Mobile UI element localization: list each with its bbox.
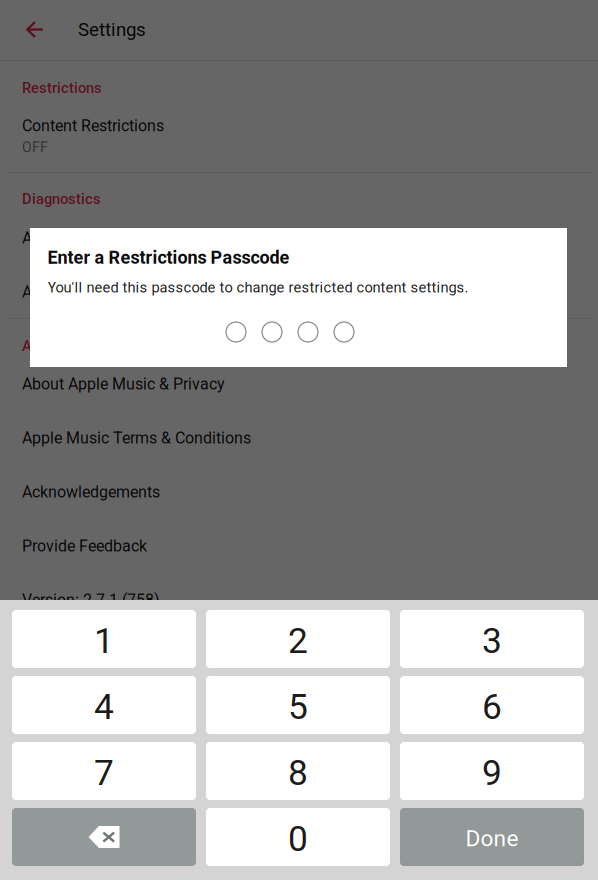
- staticText: Enter a Restrictions Passcode: [47, 247, 289, 268]
- staticText: Provide Feedback: [22, 537, 147, 555]
- staticText: Version: 2.7.1 (758): [22, 591, 160, 609]
- staticText: Restrictions: [22, 79, 102, 97]
- staticText: About: [22, 337, 61, 355]
- staticText: 9: [482, 752, 502, 794]
- staticText: 7: [94, 752, 114, 794]
- button[interactable]: Acknowledgements: [0, 465, 598, 519]
- button[interactable]: Automatic Diagnostics: [0, 211, 598, 265]
- button[interactable]: 2: [206, 610, 390, 668]
- button[interactable]: About Apple Music & Privacy: [0, 357, 598, 411]
- button[interactable]: 0: [206, 808, 390, 866]
- button[interactable]: Content Restrictions: [0, 111, 598, 161]
- staticText: About Apple Music & Privacy: [22, 375, 225, 393]
- staticText: 5: [288, 686, 308, 728]
- button[interactable]: Delete: [12, 808, 196, 866]
- button[interactable]: Settings: [78, 0, 146, 59]
- staticText: Apple Music Terms & Conditions: [22, 429, 251, 447]
- staticText: Content Restrictions: [22, 116, 164, 135]
- staticText: 0: [288, 818, 308, 860]
- button[interactable]: 8: [206, 742, 390, 800]
- staticText: 2: [288, 620, 308, 662]
- button[interactable]: Done: [400, 808, 584, 866]
- staticText: 3: [482, 620, 502, 662]
- staticText: OFF: [22, 139, 48, 156]
- button[interactable]: Apple Music Terms & Conditions: [0, 411, 598, 465]
- staticText: Automatic Diagnostics: [22, 229, 183, 247]
- staticText: Done: [465, 825, 518, 852]
- staticText: Acknowledgements: [22, 483, 160, 501]
- button[interactable]: 6: [400, 676, 584, 734]
- staticText: 6: [482, 686, 502, 728]
- staticText: You'll need this passcode to change rest…: [47, 279, 468, 296]
- button[interactable]: Provide Feedback: [0, 519, 598, 573]
- staticText: 8: [288, 752, 308, 794]
- button[interactable]: Analytics & Improvements: [0, 265, 598, 319]
- button[interactable]: 4: [12, 676, 196, 734]
- staticText: Analytics & Improvements: [22, 283, 206, 301]
- button[interactable]: 1: [12, 610, 196, 668]
- staticText: Settings: [78, 19, 146, 40]
- button[interactable]: Version: 2.7.1 (758): [0, 573, 598, 627]
- button[interactable]: 3: [400, 610, 584, 668]
- staticText: 1: [94, 620, 114, 662]
- staticText: Diagnostics: [22, 190, 101, 208]
- staticText: 4: [94, 686, 114, 728]
- button[interactable]: 9: [400, 742, 584, 800]
- button[interactable]: Back: [7, 0, 63, 59]
- button[interactable]: 7: [12, 742, 196, 800]
- button[interactable]: 5: [206, 676, 390, 734]
